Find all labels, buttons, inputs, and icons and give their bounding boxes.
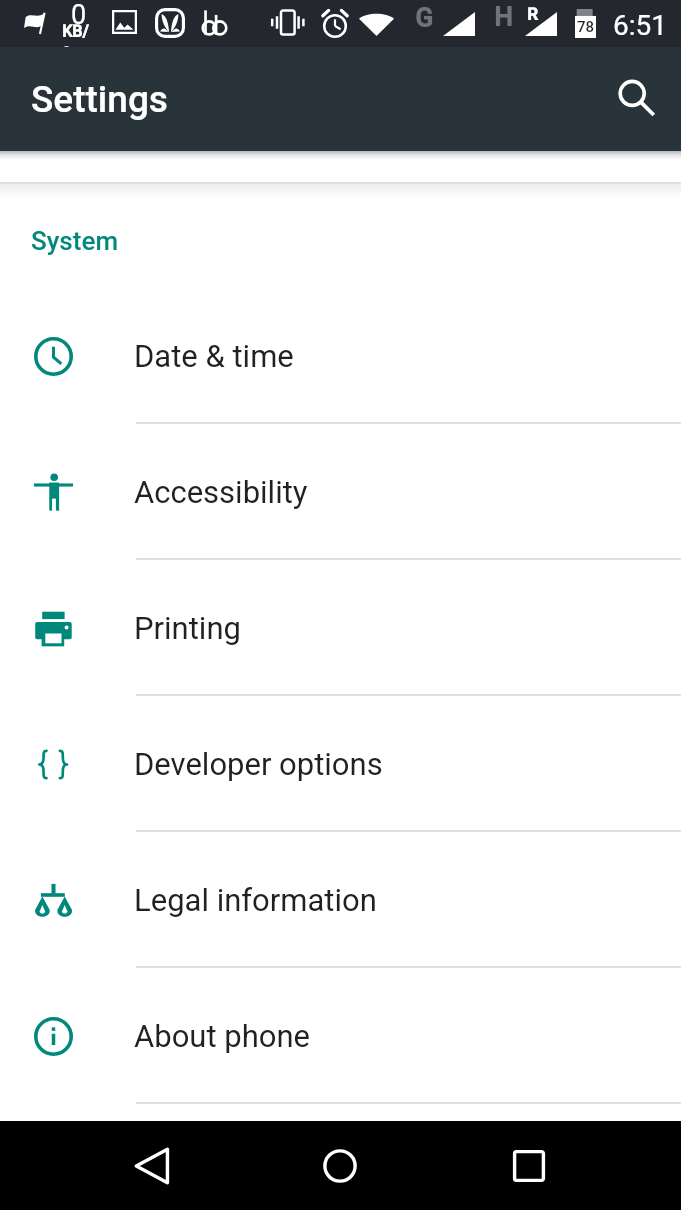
button[interactable]: Search (607, 69, 667, 129)
staticText: 6:51 (613, 9, 667, 42)
button[interactable]: Developer options (0, 696, 681, 832)
staticText: G (415, 3, 433, 33)
button[interactable]: Accessibility (0, 424, 681, 560)
button[interactable]: Date & time (0, 288, 681, 424)
staticText: Developer options (134, 746, 383, 782)
staticText: About phone (134, 1018, 310, 1054)
staticText: System (31, 226, 119, 256)
staticText: Legal information (134, 882, 377, 918)
button[interactable]: Printing (0, 560, 681, 696)
button[interactable]: Legal information (0, 832, 681, 968)
button[interactable]: Home (304, 1121, 376, 1210)
button[interactable]: Recents (493, 1121, 565, 1210)
staticText: Printing (134, 610, 241, 646)
staticText: Accessibility (134, 474, 308, 510)
staticText: H (494, 2, 513, 32)
staticText: 78 (577, 18, 595, 36)
staticText: KB/s (62, 22, 96, 60)
staticText: R (527, 4, 538, 24)
staticText: Settings (31, 78, 168, 121)
button[interactable]: Back (116, 1121, 188, 1210)
staticText: 0 (71, 0, 87, 31)
staticText: Date & time (134, 338, 294, 374)
button[interactable]: About phone (0, 968, 681, 1104)
